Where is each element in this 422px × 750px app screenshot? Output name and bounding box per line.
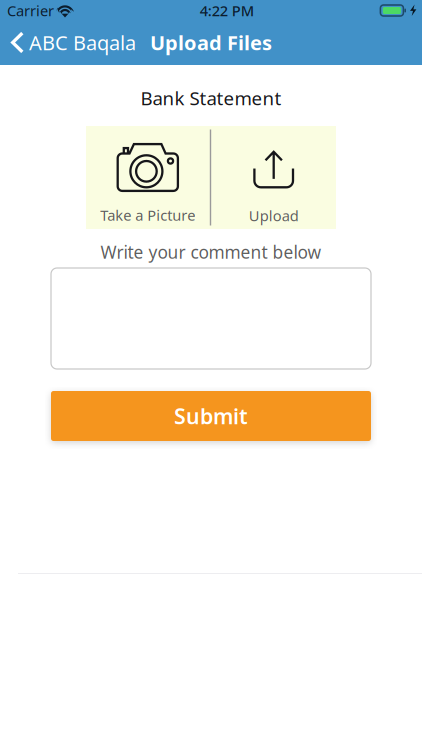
staticText: Upload xyxy=(249,206,299,225)
button[interactable]: Take a Picture xyxy=(86,126,210,229)
staticText: Submit xyxy=(174,402,248,430)
staticText: 4:22 PM xyxy=(200,1,254,20)
staticText: Take a Picture xyxy=(100,205,195,225)
staticText: Write your comment below xyxy=(100,240,321,263)
button[interactable]: Submit xyxy=(51,391,371,441)
button[interactable]: ABC Baqala xyxy=(0,20,144,64)
staticText: Bank Statement xyxy=(140,86,281,110)
staticText: Upload Files xyxy=(150,29,272,56)
staticText: Carrier xyxy=(7,1,54,20)
staticText: ABC Baqala xyxy=(29,29,136,56)
button[interactable]: Upload xyxy=(211,126,336,229)
